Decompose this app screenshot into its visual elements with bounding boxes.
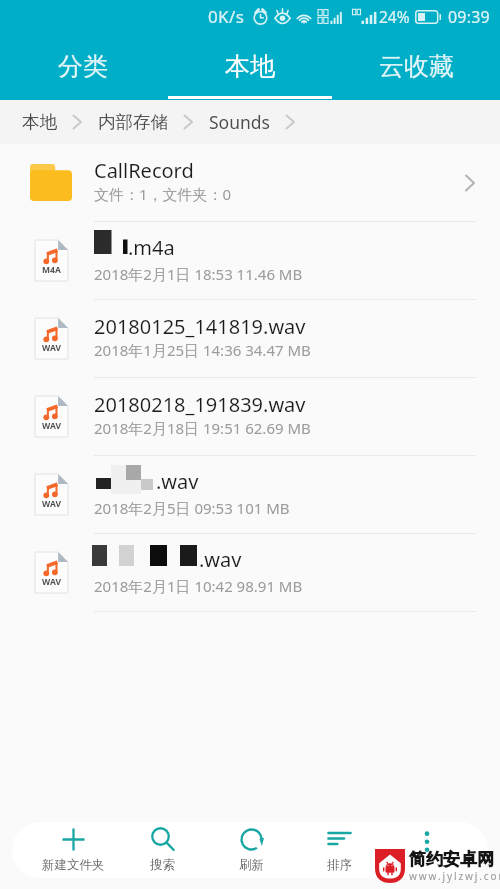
button[interactable]: WAV (0, 300, 500, 377)
button[interactable]: 刷新 (207, 822, 295, 878)
button[interactable]: WAV (0, 534, 500, 611)
button[interactable]: M4A (0, 222, 500, 299)
button[interactable]: 搜索 (118, 822, 207, 878)
button[interactable]: Open folder (464, 169, 480, 197)
staticText: 09:39 (448, 6, 490, 28)
staticText: 2018年2月18日 19:51 62.69 MB (94, 418, 311, 438)
staticText: 2018年1月25日 14:36 34.47 MB (94, 340, 311, 360)
staticText: 分类 (58, 51, 108, 82)
staticText: WAV (42, 576, 61, 588)
button[interactable]: 本地 (166, 32, 333, 100)
staticText: WAV (42, 498, 61, 510)
staticText: .wav (199, 546, 242, 573)
staticText: 文件：1，文件夹：0 (94, 184, 232, 204)
staticText: Sounds (209, 110, 270, 134)
staticText: 2018年2月1日 18:53 11.46 MB (94, 264, 303, 284)
staticText: WAV (42, 342, 61, 354)
button[interactable]: 本地 (22, 111, 57, 133)
button[interactable]: 排序 (295, 822, 383, 878)
staticText: .m4a (128, 234, 175, 261)
button[interactable]: 云收藏 (333, 32, 500, 100)
staticText: 2018年2月5日 09:53 101 MB (94, 498, 290, 518)
staticText: M4A (42, 264, 61, 276)
staticText: 0K/s (208, 5, 245, 28)
staticText: 2018年2月1日 10:42 98.91 MB (94, 576, 303, 596)
staticText: WAV (42, 420, 61, 432)
staticText: .wav (156, 468, 199, 495)
staticText: CallRecord (94, 157, 194, 184)
staticText: 本地 (22, 111, 57, 133)
staticText: 20180218_191839.wav (94, 391, 306, 418)
button[interactable]: More options (383, 822, 471, 878)
staticText: 20180125_141819.wav (94, 313, 306, 340)
button[interactable]: CallRecord (0, 144, 500, 221)
button[interactable]: WAV (0, 456, 500, 533)
staticText: 排序 (327, 857, 352, 873)
button[interactable]: 内部存储 (98, 111, 168, 133)
staticText: 刷新 (239, 857, 264, 873)
staticText: 简约安卓网 (409, 849, 494, 870)
staticText: www.jylzwj.com (409, 869, 500, 883)
staticText: 新建文件夹 (42, 857, 105, 873)
staticText: 内部存储 (98, 111, 168, 133)
button[interactable]: 新建文件夹 (29, 822, 118, 878)
staticText: 本地 (225, 51, 275, 82)
button[interactable]: 分类 (0, 32, 166, 100)
staticText: 搜索 (150, 857, 175, 873)
staticText: 云收藏 (379, 51, 454, 82)
button[interactable]: WAV (0, 378, 500, 455)
button[interactable]: Sounds (209, 110, 270, 134)
staticText: 24% (379, 6, 410, 27)
